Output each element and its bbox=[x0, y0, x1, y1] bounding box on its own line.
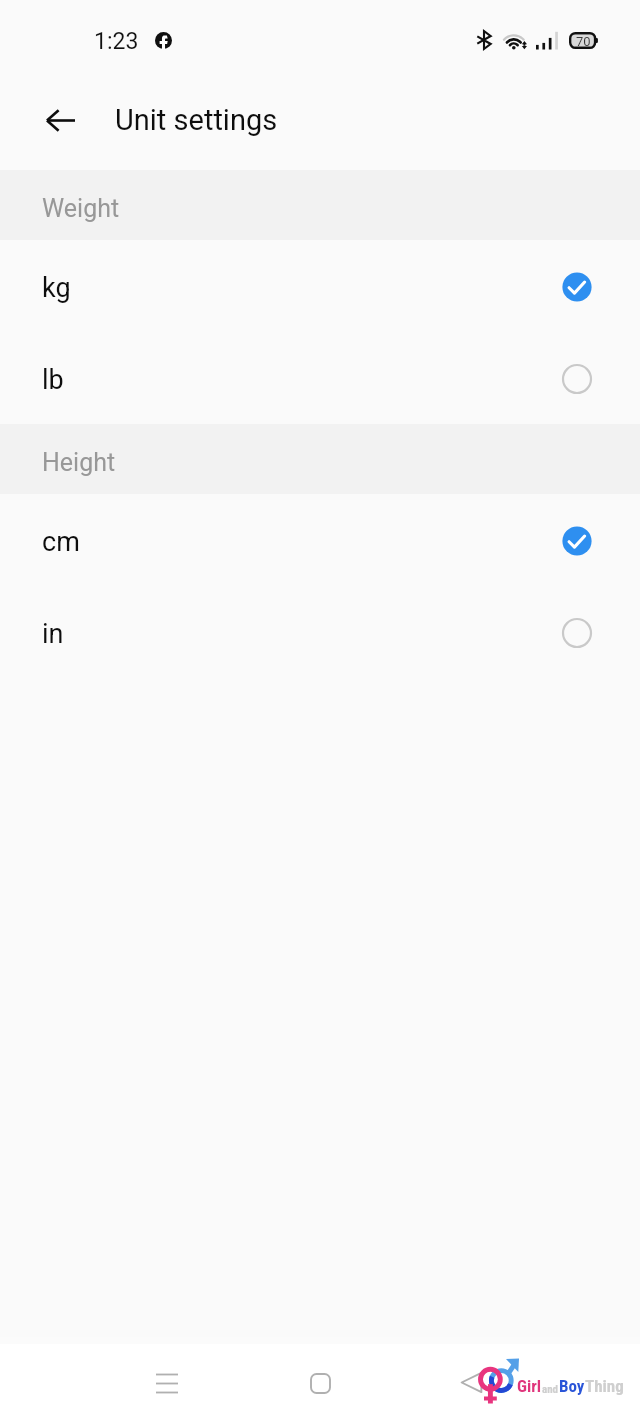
staticText: 70 bbox=[576, 34, 591, 49]
staticText: cm bbox=[42, 526, 80, 558]
staticText: 1:23 bbox=[94, 28, 139, 55]
staticText: Weight bbox=[42, 194, 120, 223]
staticText: Height bbox=[42, 448, 116, 477]
button[interactable]: Back bbox=[32, 91, 90, 149]
staticText: Thing bbox=[585, 1376, 624, 1396]
button[interactable]: kg bbox=[0, 240, 640, 332]
staticText: and bbox=[542, 1383, 559, 1396]
button[interactable]: lb bbox=[0, 332, 640, 424]
staticText: in bbox=[42, 618, 64, 650]
staticText: kg bbox=[42, 272, 71, 304]
staticText: lb bbox=[42, 364, 64, 396]
staticText: Unit settings bbox=[115, 103, 278, 137]
button[interactable]: in bbox=[0, 586, 640, 678]
staticText: Girl bbox=[517, 1376, 542, 1396]
button[interactable]: cm bbox=[0, 494, 640, 586]
staticText: Boy bbox=[559, 1376, 585, 1396]
button[interactable]: Back bbox=[450, 1361, 493, 1404]
button[interactable]: Recent apps bbox=[135, 1351, 199, 1415]
button[interactable]: Home bbox=[288, 1351, 352, 1415]
